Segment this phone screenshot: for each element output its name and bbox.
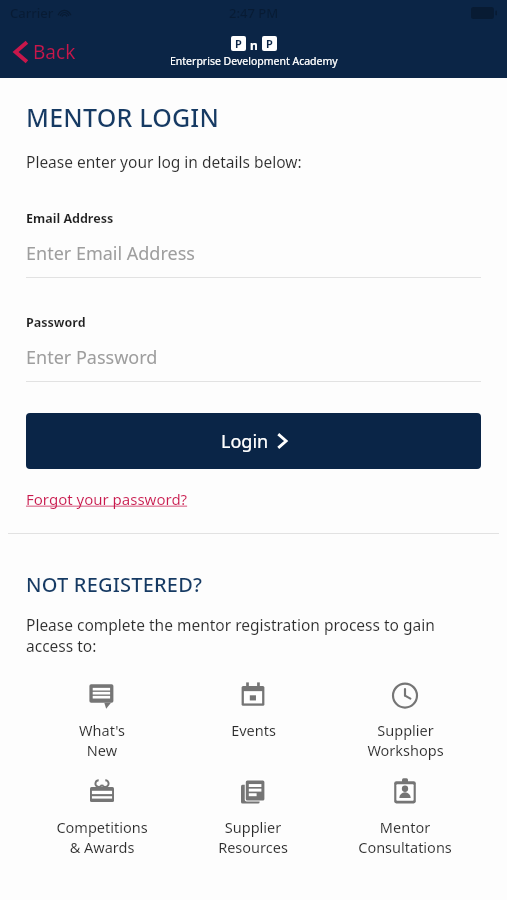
- staticText: Mentor Consultations: [358, 817, 452, 858]
- staticText: Enter Email Address: [26, 241, 195, 266]
- staticText: Supplier Resources: [218, 817, 288, 858]
- staticText: n: [250, 37, 258, 51]
- staticText: 2:47 PM: [229, 4, 279, 22]
- staticText: Password: [26, 314, 86, 331]
- staticText: Please enter your log in details below:: [26, 151, 302, 172]
- button[interactable]: Supplier Resources: [177, 777, 329, 858]
- staticText: Please complete the mentor registration …: [26, 614, 481, 657]
- staticText: P: [235, 36, 242, 51]
- button[interactable]: Events: [177, 680, 329, 740]
- staticText: Enter Password: [26, 345, 158, 370]
- button[interactable]: Back: [10, 35, 80, 69]
- staticText: Events: [231, 720, 276, 740]
- staticText: NOT REGISTERED?: [26, 571, 203, 598]
- staticText: P: [266, 36, 273, 51]
- button[interactable]: Competitions & Awards: [26, 777, 177, 858]
- staticText: Login: [221, 429, 269, 454]
- staticText: Carrier: [10, 4, 54, 22]
- staticText: Supplier Workshops: [367, 720, 444, 761]
- button[interactable]: Mentor Consultations: [329, 777, 481, 858]
- staticText: Enterprise Development Academy: [170, 54, 338, 68]
- staticText: MENTOR LOGIN: [26, 100, 220, 134]
- staticText: Competitions & Awards: [56, 817, 148, 858]
- staticText: What's New: [79, 720, 125, 761]
- staticText: Forgot your password?: [26, 489, 188, 509]
- button[interactable]: Supplier Workshops: [329, 680, 481, 761]
- button[interactable]: Enter Email Address: [26, 241, 481, 266]
- button[interactable]: Enter Password: [26, 345, 481, 370]
- staticText: Email Address: [26, 210, 114, 227]
- button[interactable]: Login: [26, 413, 481, 469]
- staticText: Back: [33, 39, 76, 65]
- button[interactable]: What's New: [26, 680, 177, 761]
- button[interactable]: Forgot your password?: [26, 489, 188, 509]
